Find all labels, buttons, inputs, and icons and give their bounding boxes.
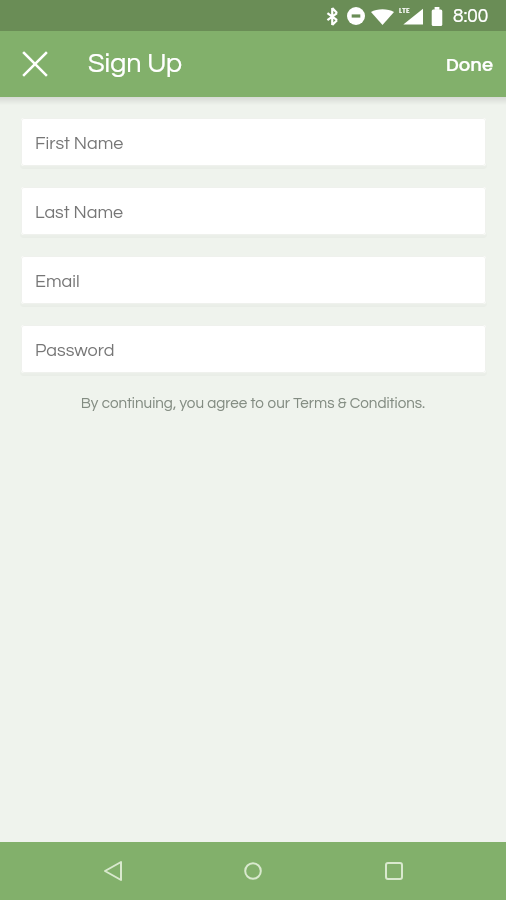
button[interactable]: Done xyxy=(428,31,506,97)
button[interactable]: Last Name xyxy=(21,187,486,235)
button[interactable]: Close xyxy=(11,40,59,88)
staticText: By continuing, you agree to our Terms & … xyxy=(0,396,506,412)
staticText: Done xyxy=(446,52,494,77)
staticText: 8:00 xyxy=(453,6,489,26)
button[interactable]: Recents xyxy=(366,843,422,899)
staticText: Email xyxy=(35,272,80,291)
button[interactable]: Home xyxy=(225,843,281,899)
button[interactable]: Email xyxy=(21,256,486,304)
button[interactable]: Password xyxy=(21,325,486,373)
staticText: Password xyxy=(35,341,115,360)
staticText: First Name xyxy=(35,134,124,153)
button[interactable]: First Name xyxy=(21,118,486,166)
staticText: Last Name xyxy=(35,203,124,222)
staticText: Sign Up xyxy=(88,50,183,78)
staticText: LTE xyxy=(399,6,410,16)
button[interactable]: Back xyxy=(85,843,141,899)
